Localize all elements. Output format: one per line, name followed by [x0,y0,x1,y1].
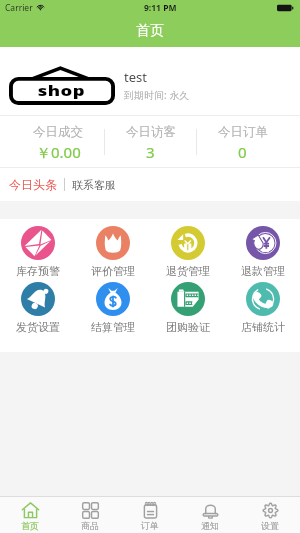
staticText: 评价管理 [91,264,135,278]
staticText: 库存预警 [16,264,60,278]
button[interactable]: 商品 [60,497,120,533]
staticText: 首页 [136,22,164,40]
staticText: 团购验证 [166,320,210,334]
button[interactable]: 库存预警 [0,226,75,278]
button[interactable]: 订单 [120,497,180,533]
button[interactable]: 团购验证 [150,282,225,334]
staticText: 退款管理 [241,264,285,278]
staticText: 通知 [201,520,219,531]
staticText: 到期时间: 永久 [124,88,190,102]
staticText: 联系客服 [72,178,116,192]
button[interactable]: 首页 [0,497,60,533]
staticText: 设置 [261,520,279,531]
staticText: 订单 [141,520,159,531]
staticText: 9:11 PM [144,2,177,14]
button[interactable]: 评价管理 [75,226,150,278]
staticText: 0 [238,142,247,162]
button[interactable]: 今日成交 [12,116,104,168]
staticText: Carrier [5,2,33,14]
button[interactable]: 今日订单 [197,116,288,168]
staticText: 发货设置 [16,320,60,334]
staticText: 店铺统计 [241,320,285,334]
button[interactable]: 发货设置 [0,282,75,334]
button[interactable]: 退款管理 [225,226,300,278]
staticText: test [124,68,147,86]
button[interactable]: 设置 [240,497,300,533]
staticText: 3 [146,142,155,162]
staticText: 今日成交 [33,124,83,140]
staticText: 今日头条 [9,177,57,192]
button[interactable]: 今日访客 [105,116,196,168]
staticText: 结算管理 [91,320,135,334]
button[interactable]: 通知 [180,497,240,533]
staticText: 今日订单 [218,124,268,140]
button[interactable]: 退货管理 [150,226,225,278]
button[interactable]: 今日头条 [7,177,59,192]
staticText: 商品 [81,520,99,531]
staticText: ￥0.00 [36,142,81,162]
staticText: 退货管理 [166,264,210,278]
button[interactable]: 联系客服 [70,178,118,192]
staticText: 首页 [21,520,39,531]
button[interactable]: 结算管理 [75,282,150,334]
staticText: 今日访客 [126,124,176,140]
button[interactable]: 店铺统计 [225,282,300,334]
staticText: shop [38,82,86,100]
